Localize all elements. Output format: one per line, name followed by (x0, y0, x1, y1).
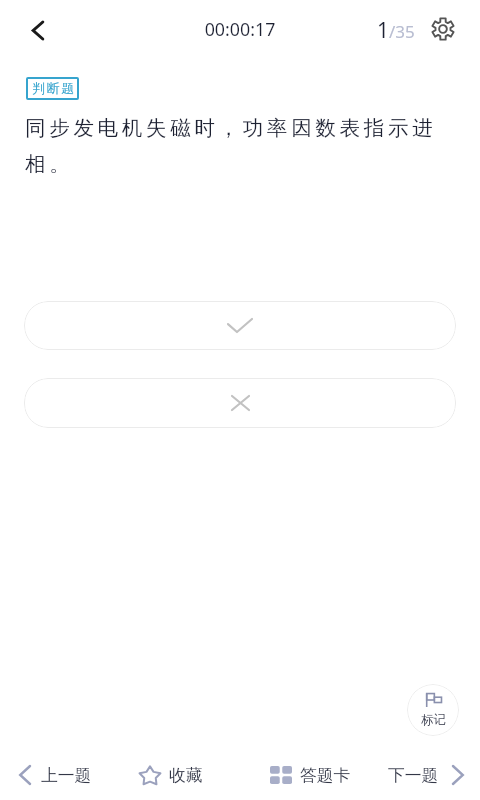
button[interactable]: 上一题 (19, 750, 119, 800)
button[interactable]: 收藏 (139, 750, 215, 800)
staticText: 上一题 (41, 765, 92, 786)
button[interactable]: Settings (428, 14, 458, 44)
staticText: 同步发电机失磁时，功率因数表指示进相。 (25, 115, 443, 177)
button[interactable]: False (24, 378, 456, 428)
button[interactable]: True (24, 301, 456, 350)
button[interactable]: Back (16, 8, 60, 52)
staticText: 标记 (421, 712, 446, 728)
staticText: 收藏 (169, 765, 203, 786)
button[interactable]: 下一题 (388, 750, 468, 800)
staticText: 00:00:17 (0, 17, 480, 41)
staticText: 下一题 (388, 765, 439, 786)
staticText: 判断题 (32, 80, 76, 96)
button[interactable]: 答题卡 (270, 750, 362, 800)
button[interactable]: 标记 (407, 684, 459, 736)
staticText: 答题卡 (300, 765, 351, 786)
staticText: 1/35 (377, 16, 415, 45)
